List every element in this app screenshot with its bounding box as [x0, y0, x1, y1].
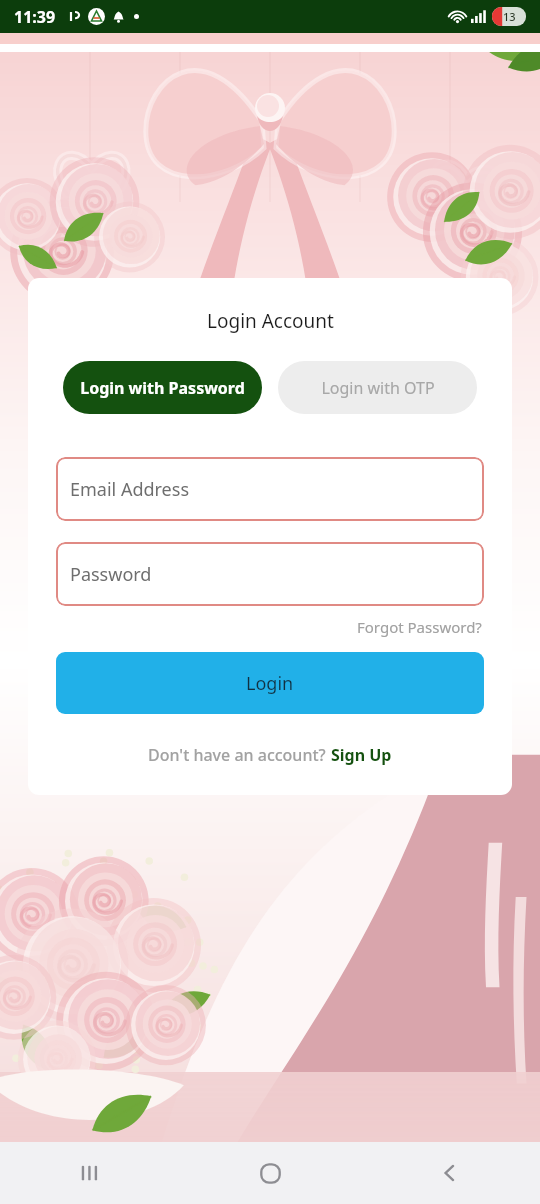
- staticText: Don't have an account?: [148, 744, 330, 766]
- button[interactable]: Password: [56, 542, 484, 606]
- staticText: Login: [246, 671, 294, 696]
- staticText: 11:39: [14, 6, 56, 28]
- staticText: Login with Password: [80, 377, 245, 399]
- button[interactable]: Login with Password: [63, 361, 262, 414]
- button[interactable]: Login: [56, 652, 484, 714]
- button[interactable]: Sign Up: [330, 742, 393, 768]
- button[interactable]: Home: [180, 1142, 360, 1204]
- staticText: 13: [503, 9, 516, 24]
- staticText: Email Address: [70, 477, 190, 502]
- staticText: Sign Up: [331, 744, 392, 766]
- button[interactable]: Email Address: [56, 457, 484, 521]
- staticText: Password: [70, 562, 152, 587]
- button[interactable]: Login with OTP: [278, 361, 477, 414]
- button[interactable]: Back: [360, 1142, 540, 1204]
- staticText: Forgot Password?: [357, 617, 482, 637]
- staticText: Login with OTP: [321, 377, 435, 399]
- staticText: Login Account: [207, 308, 334, 334]
- button[interactable]: Recent apps: [0, 1142, 180, 1204]
- button[interactable]: Forgot Password?: [355, 614, 484, 640]
